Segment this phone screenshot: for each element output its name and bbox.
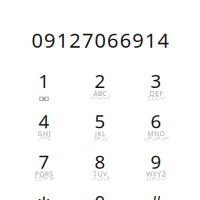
staticText: 9 (150, 149, 161, 174)
button[interactable]: 2 (72, 68, 128, 104)
staticText: TUV (93, 170, 107, 178)
staticText: ف‌ق‌ک (91, 173, 109, 181)
button[interactable]: 4 (16, 108, 72, 144)
staticText: DEF (149, 89, 162, 98)
button[interactable]: ∗ (16, 189, 72, 200)
button[interactable]: 1 (16, 68, 72, 104)
button[interactable]: 0 (72, 189, 128, 200)
staticText: 09127066914 (31, 27, 168, 53)
button[interactable]: # (128, 189, 184, 200)
button[interactable]: 7 (16, 148, 72, 184)
staticText: 0 (94, 189, 105, 200)
staticText: # (150, 189, 162, 200)
button[interactable]: 5 (72, 108, 128, 144)
button[interactable]: 09127066914 (15, 28, 185, 52)
staticText: ABC (93, 89, 106, 98)
staticText: 8 (94, 149, 105, 174)
button[interactable]: 3 (128, 68, 184, 104)
staticText: 5 (94, 109, 105, 133)
staticText: ش‌ص‌ض (144, 133, 168, 141)
staticText: WXYZ (146, 170, 166, 178)
staticText: 6 (150, 109, 161, 133)
staticText: ا‌ب‌پ‌ت (90, 93, 110, 100)
staticText: 2 (94, 68, 105, 93)
staticText: ∗ (36, 191, 52, 200)
button[interactable]: 8 (72, 148, 128, 184)
staticText: MNO (147, 129, 164, 138)
staticText: 7 (38, 149, 49, 174)
staticText: GHI (37, 129, 50, 138)
staticText: گ‌ل‌م‌ن (146, 173, 166, 181)
staticText: JKL (95, 129, 105, 138)
staticText: خ‌د‌ذ‌ر (37, 133, 51, 141)
staticText: PQRS (35, 170, 53, 178)
button[interactable]: 6 (128, 108, 184, 144)
staticText: 1 (38, 68, 49, 93)
staticText: 3 (150, 68, 161, 93)
staticText: ط‌ظ‌ع‌غ (34, 173, 54, 181)
button[interactable]: 9 (128, 148, 184, 184)
staticText: ز‌ژ‌س (93, 133, 107, 141)
staticText: ث‌ج‌چ‌ح (147, 93, 165, 100)
staticText: 4 (38, 109, 49, 133)
